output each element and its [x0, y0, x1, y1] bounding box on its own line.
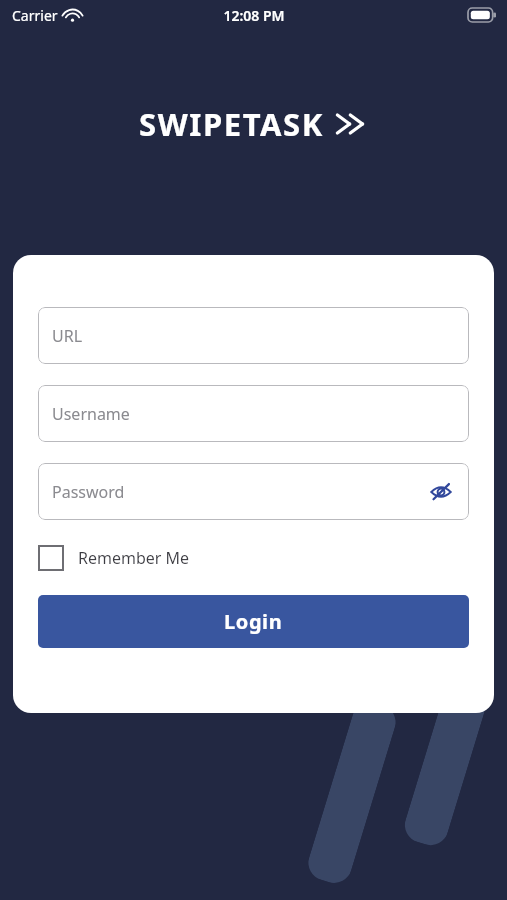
button[interactable]: URL — [38, 307, 469, 364]
staticText: Remember Me — [78, 547, 190, 569]
button[interactable]: Password — [38, 463, 469, 520]
staticText: Username — [52, 403, 130, 425]
staticText: 12:08 PM — [223, 6, 285, 25]
button[interactable]: Username — [38, 385, 469, 442]
button[interactable]: Show password — [423, 474, 459, 510]
button[interactable]: Login — [38, 595, 469, 648]
staticText: SWIPETASK — [139, 103, 324, 145]
staticText: URL — [52, 325, 83, 347]
button[interactable]: Remember Me — [38, 543, 190, 573]
staticText: Carrier — [12, 6, 58, 25]
staticText: Password — [52, 481, 125, 503]
staticText: Login — [224, 608, 283, 635]
